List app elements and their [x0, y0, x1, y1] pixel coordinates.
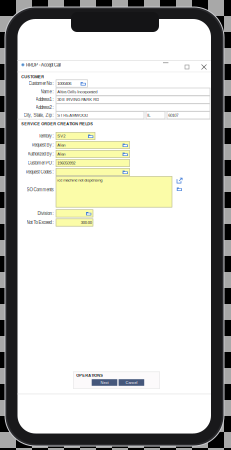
button[interactable]: Attachments	[0, 0, 231, 450]
button[interactable]: STREAMWOOD	[0, 0, 231, 450]
button[interactable]	[0, 0, 231, 450]
staticText: Request By :	[31, 142, 53, 147]
button[interactable]: Next	[0, 0, 231, 450]
staticText: Request Codes :	[25, 169, 53, 174]
button[interactable]: Altira Grills Incorporated	[0, 0, 231, 450]
staticText: Alan	[57, 143, 65, 147]
staticText: Division :	[37, 211, 53, 216]
button[interactable]: Expand comments	[0, 0, 231, 450]
staticText: SV2	[57, 134, 65, 138]
staticText: Address2 :	[35, 105, 53, 110]
staticText: SO Comments	[26, 187, 53, 192]
staticText: SERVICE ORDER CREATION FIELDS	[21, 122, 93, 126]
button[interactable]: Maximize	[0, 0, 231, 450]
button[interactable]: 30 E IRVING PARK RD	[0, 0, 231, 450]
button[interactable]: ice machine not dispensing	[0, 0, 231, 450]
staticText: Customer PO :	[27, 160, 53, 165]
staticText: ice machine not dispensing	[57, 178, 102, 182]
staticText: HRDP - Accept Call	[26, 62, 61, 67]
staticText: OPERATIONS	[76, 373, 103, 378]
staticText: 60107	[168, 113, 178, 118]
button[interactable]: 1000406	[0, 0, 231, 450]
staticText: Name :	[40, 89, 53, 94]
button[interactable]: Minimize	[0, 0, 231, 450]
button[interactable]: Alan	[0, 0, 231, 450]
button[interactable]: Close	[0, 0, 231, 450]
button[interactable]: 196050992	[0, 0, 231, 450]
staticText: City, State, Zip :	[23, 113, 53, 118]
staticText: 196050992	[57, 161, 75, 165]
staticText: 1000406	[57, 81, 71, 86]
staticText: Next	[100, 380, 108, 385]
button[interactable]: Cancel	[0, 0, 231, 450]
staticText: CUSTOMER	[21, 75, 44, 79]
staticText: Address1 :	[35, 97, 53, 102]
staticText: IL	[147, 113, 150, 118]
button[interactable]: SV2	[0, 0, 231, 450]
staticText: Territory :	[38, 133, 53, 138]
staticText: Alan	[57, 152, 65, 156]
button[interactable]	[0, 0, 231, 450]
staticText: STREAMWOOD	[57, 113, 88, 118]
staticText: 300.00	[81, 220, 92, 225]
button[interactable]: Alan	[0, 0, 231, 450]
staticText: Not To Exceed :	[26, 220, 53, 225]
button[interactable]: 300.00	[0, 0, 231, 450]
staticText: Altira Grills Incorporated	[57, 89, 97, 94]
staticText: Cancel	[125, 380, 137, 385]
staticText: Authorized By :	[27, 151, 53, 156]
button[interactable]	[0, 0, 231, 450]
staticText: 30 E IRVING PARK RD	[57, 97, 99, 102]
staticText: Customer No :	[28, 81, 53, 86]
